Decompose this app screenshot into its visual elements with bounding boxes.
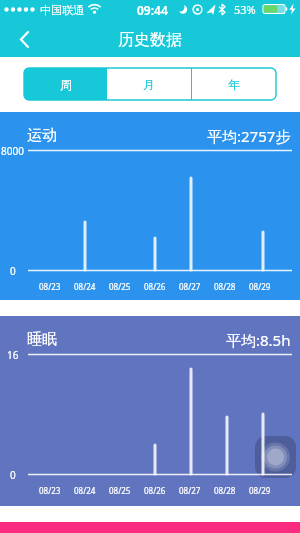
staticText: 睡眠 — [27, 330, 57, 349]
staticText: 09:44 — [137, 2, 168, 18]
staticText: 08/29 — [249, 281, 271, 292]
staticText: 中国联通 — [40, 3, 84, 17]
staticText: 08/26 — [144, 281, 166, 292]
staticText: 08/27 — [179, 485, 201, 496]
staticText: 08/26 — [144, 485, 166, 496]
staticText: 0 — [10, 468, 16, 482]
button[interactable]: 年 — [192, 68, 276, 100]
staticText: 08/24 — [74, 485, 96, 496]
staticText: 08/24 — [74, 281, 96, 292]
staticText: 08/25 — [109, 281, 131, 292]
staticText: 年 — [228, 77, 240, 92]
staticText: 平均:8.5h — [226, 330, 291, 350]
button[interactable] — [255, 436, 296, 478]
staticText: 0 — [10, 264, 16, 278]
staticText: 月 — [143, 77, 155, 92]
staticText: 08/23 — [39, 281, 61, 292]
button[interactable]: 周 — [24, 68, 107, 100]
staticText: 08/23 — [39, 485, 61, 496]
staticText: 08/25 — [109, 485, 131, 496]
staticText: 08/28 — [214, 281, 236, 292]
button[interactable]: 月 — [107, 68, 191, 100]
staticText: 53% — [234, 2, 256, 17]
staticText: 8000 — [1, 144, 24, 158]
staticText: 平均:2757步 — [207, 126, 291, 146]
staticText: 08/29 — [249, 485, 271, 496]
button[interactable] — [6, 24, 42, 54]
staticText: 08/27 — [179, 281, 201, 292]
staticText: 16 — [7, 348, 19, 362]
staticText: 08/28 — [214, 485, 236, 496]
staticText: 历史数据 — [118, 30, 182, 50]
staticText: 周 — [60, 77, 72, 92]
staticText: 运动 — [27, 126, 57, 145]
